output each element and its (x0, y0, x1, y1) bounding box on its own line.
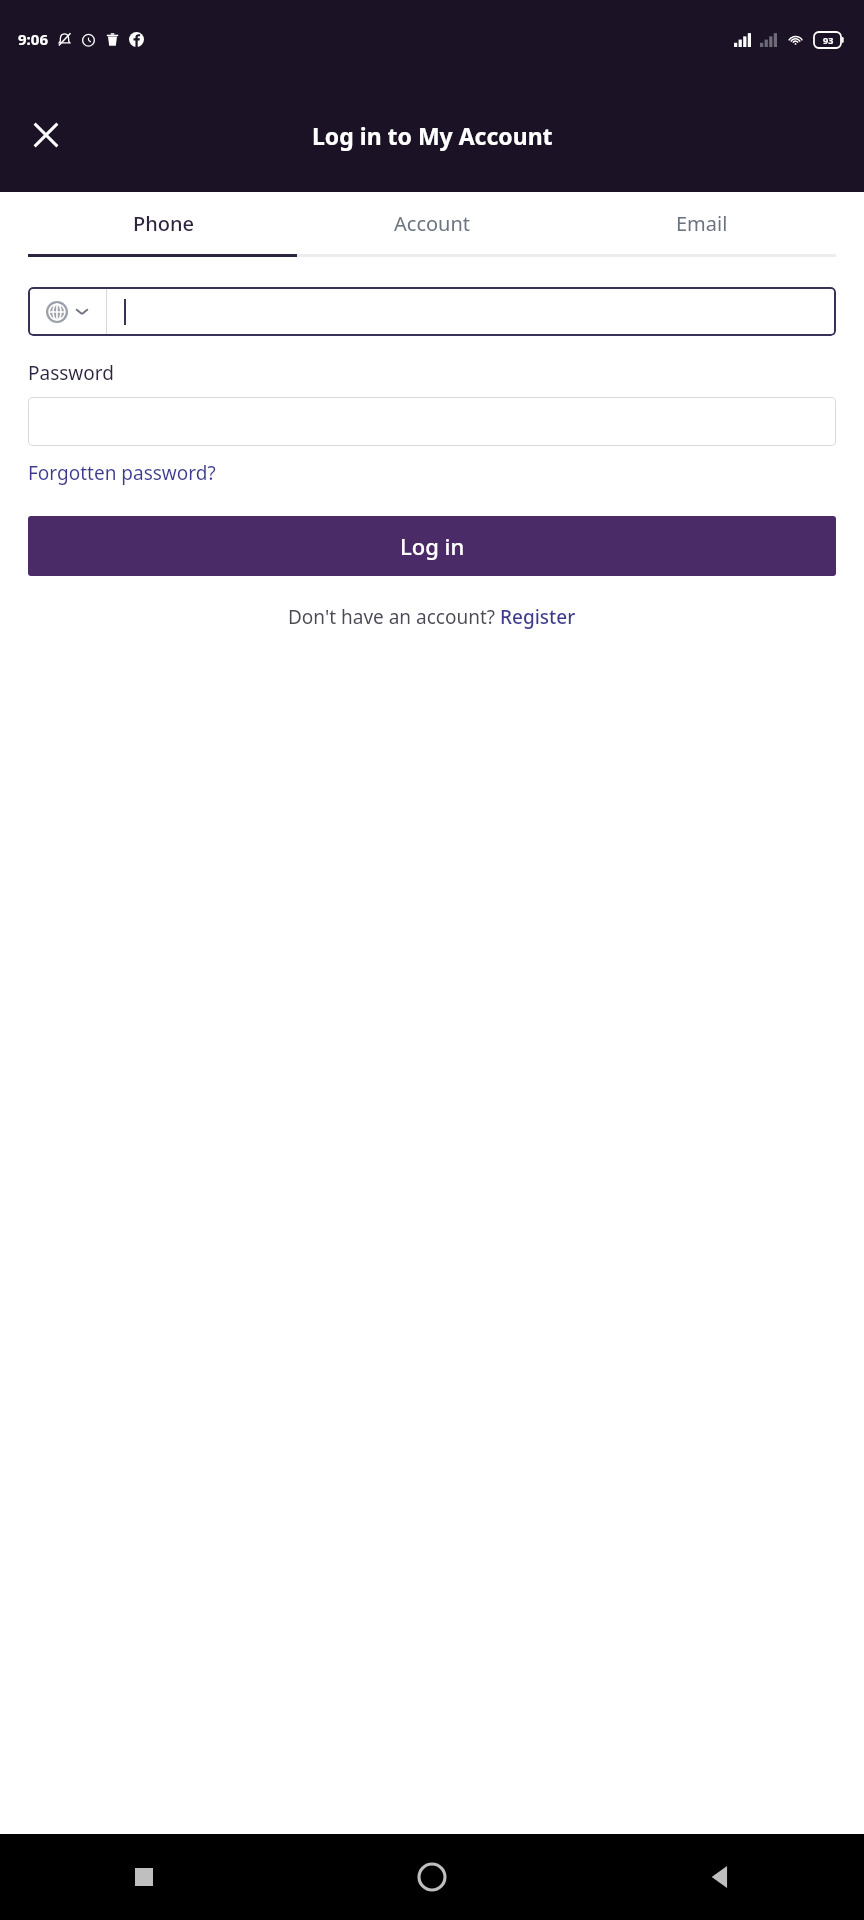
button[interactable] (107, 287, 836, 336)
staticText: Forgotten password? (28, 460, 216, 486)
button[interactable]: Recent apps (0, 1834, 288, 1920)
button[interactable]: Phone (28, 192, 298, 254)
staticText: 93 (823, 34, 834, 46)
button[interactable]: Forgotten password? (28, 460, 216, 486)
staticText: Register (500, 604, 576, 630)
staticText: Email (676, 210, 728, 237)
button[interactable]: Account (298, 192, 567, 254)
button[interactable]: Email (567, 192, 836, 254)
button[interactable]: Home (288, 1834, 576, 1920)
staticText: Log in (400, 531, 465, 561)
staticText: Password (28, 360, 114, 386)
button[interactable]: Back (576, 1834, 864, 1920)
button[interactable] (28, 397, 836, 446)
button[interactable]: Select country code (28, 287, 106, 336)
button[interactable]: Register (500, 604, 576, 630)
button[interactable]: Log in (28, 516, 836, 576)
staticText: Account (394, 210, 471, 237)
staticText: Phone (133, 210, 194, 237)
button[interactable]: Close (18, 107, 74, 163)
staticText: Don't have an account? (288, 604, 500, 630)
staticText: Log in to My Account (312, 120, 553, 151)
staticText: 9:06 (18, 29, 48, 49)
